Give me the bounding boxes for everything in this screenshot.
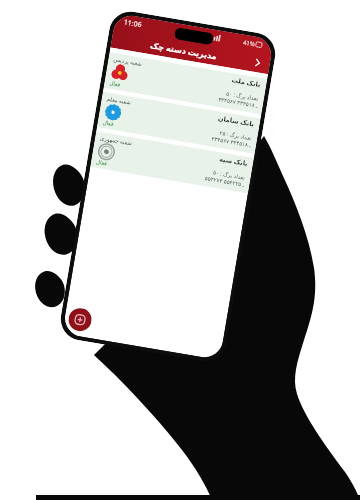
staticText: فعال — [109, 80, 121, 88]
staticText: شعبه جمهوری — [100, 134, 133, 146]
staticText: بانک سامان — [217, 113, 255, 128]
staticText: بانک سپه — [219, 154, 249, 168]
button[interactable]: Back — [249, 54, 265, 70]
staticText: ۳۳۴۵۶۷ ـ ۳۳۴۵۱۸ — [218, 95, 258, 109]
staticText: شعبه پردیس — [113, 55, 143, 67]
staticText: 11:06 — [123, 17, 142, 30]
button[interactable]: شعبه معلم — [97, 92, 261, 154]
staticText: ۵۵۴۲۷۴ ـ ۵۵۴۲۲۵ — [204, 174, 245, 188]
staticText: شعبه معلم — [106, 95, 132, 106]
staticText: تعداد برگ : ۲۵ — [219, 129, 253, 141]
staticText: فعال — [102, 119, 114, 127]
button[interactable]: شعبه جمهوری — [90, 131, 254, 193]
button[interactable]: Add cheque book — [67, 306, 93, 333]
staticText: فعال — [96, 159, 107, 166]
staticText: بانک ملت — [231, 75, 262, 89]
staticText: تعداد برگ : ۵۰ — [226, 89, 259, 102]
staticText: مدیریت دسته چک — [149, 39, 218, 61]
staticText: تعداد برگ : ۵۰ — [212, 168, 246, 181]
staticText: ۳۳۴۵۶۷ ـ ۳۳۴۵۱۸ — [211, 135, 252, 148]
staticText: 41% — [242, 39, 256, 48]
button[interactable]: شعبه پردیس — [103, 52, 267, 115]
